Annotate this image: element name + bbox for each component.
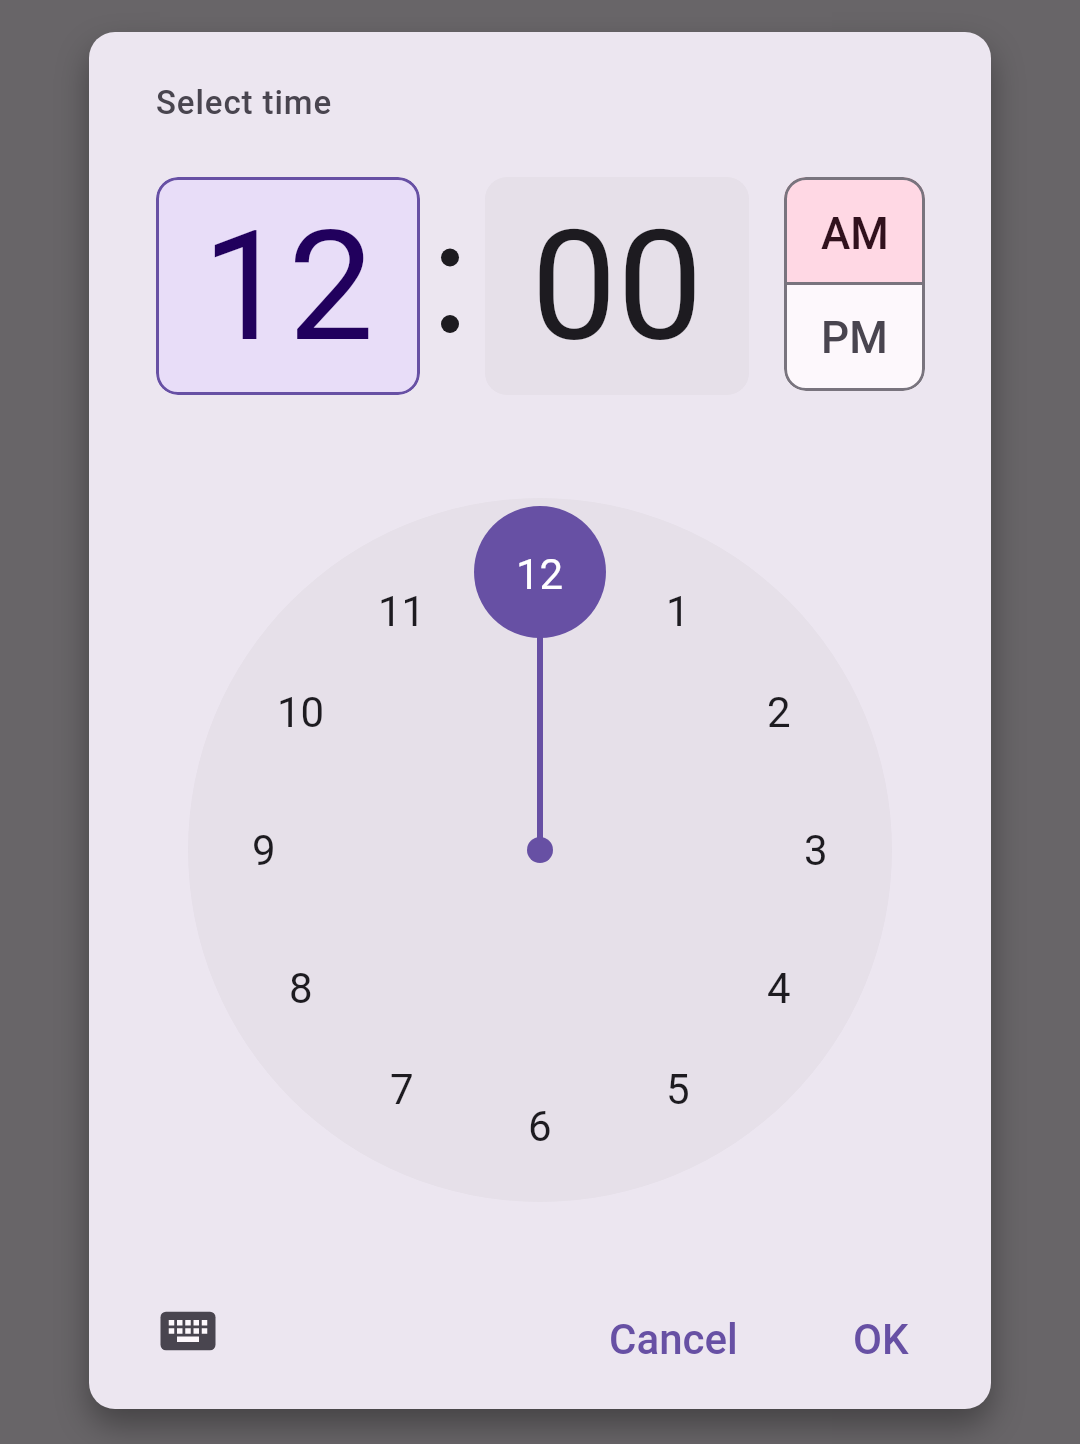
staticText: 9 — [252, 826, 276, 875]
button[interactable] — [155, 1298, 221, 1364]
staticText: 3 — [804, 826, 828, 875]
staticText: 5 — [666, 1065, 690, 1114]
button[interactable]: 4 — [729, 938, 829, 1038]
button[interactable]: 1 — [628, 561, 728, 661]
button[interactable]: 12 — [156, 177, 420, 395]
button[interactable]: 8 — [251, 938, 351, 1038]
button[interactable]: 12 — [490, 524, 590, 624]
staticText: 11 — [378, 587, 426, 636]
button[interactable]: AM — [784, 177, 925, 284]
staticText: PM — [821, 312, 888, 364]
button[interactable]: 6 — [490, 1076, 590, 1176]
staticText: 6 — [528, 1102, 552, 1151]
staticText: 4 — [767, 964, 791, 1013]
staticText: Cancel — [609, 1315, 738, 1364]
staticText: OK — [853, 1315, 909, 1364]
button[interactable]: 2 — [729, 662, 829, 762]
staticText: 7 — [390, 1065, 414, 1114]
button[interactable]: PM — [784, 284, 925, 391]
button[interactable]: 3 — [766, 800, 866, 900]
staticText: 1 — [666, 587, 690, 636]
staticText: AM — [821, 208, 889, 260]
staticText: 12 — [516, 550, 564, 599]
staticText: Select time — [156, 83, 333, 122]
button[interactable]: Cancel — [583, 1299, 763, 1379]
staticText: 00 — [531, 197, 703, 376]
staticText: 10 — [277, 688, 325, 737]
button[interactable]: OK — [826, 1299, 936, 1379]
button[interactable]: 7 — [352, 1039, 452, 1139]
button[interactable]: 10 — [251, 662, 351, 762]
button[interactable]: 00 — [485, 177, 749, 395]
button[interactable]: 9 — [214, 800, 314, 900]
button[interactable]: 5 — [628, 1039, 728, 1139]
staticText: 12 — [202, 197, 374, 376]
staticText: 8 — [289, 964, 313, 1013]
button[interactable]: 11 — [352, 561, 452, 661]
staticText: 2 — [767, 688, 791, 737]
